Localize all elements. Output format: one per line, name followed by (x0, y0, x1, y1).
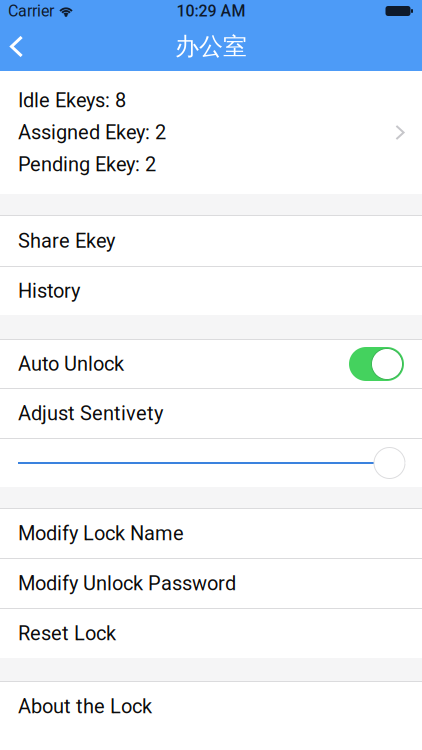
button[interactable]: Idle Ekeys: 8 (0, 71, 422, 194)
staticText: About the Lock (18, 695, 152, 718)
button[interactable]: About the Lock (0, 682, 422, 731)
staticText: Share Ekey (18, 229, 115, 253)
button[interactable]: History (0, 267, 422, 315)
staticText: Idle Ekeys: 8 (18, 89, 126, 112)
staticText: Carrier (8, 2, 54, 20)
staticText: Modify Lock Name (18, 522, 184, 545)
staticText: Modify Unlock Password (18, 572, 236, 595)
button[interactable]: Modify Unlock Password (0, 559, 422, 608)
button[interactable]: Reset Lock (0, 609, 422, 658)
staticText: Adjust Sentivety (18, 402, 163, 425)
staticText: Reset Lock (18, 622, 116, 645)
button[interactable]: Auto Unlock (349, 347, 404, 381)
staticText: Pending Ekey: 2 (18, 153, 156, 176)
staticText: Auto Unlock (18, 352, 124, 376)
staticText: Assigned Ekey: 2 (18, 121, 166, 144)
button[interactable]: Modify Lock Name (0, 509, 422, 558)
staticText: History (18, 279, 80, 303)
staticText: 办公室 (175, 31, 247, 62)
button[interactable]: Adjust Sentivety (0, 389, 422, 438)
button[interactable]: Share Ekey (0, 216, 422, 266)
staticText: 10:29 AM (176, 2, 245, 20)
button[interactable]: Back (0, 22, 46, 71)
